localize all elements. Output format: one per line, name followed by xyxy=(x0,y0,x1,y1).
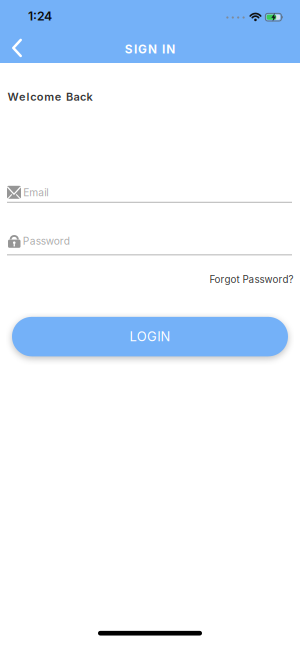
button[interactable]: Back xyxy=(0,32,32,64)
button[interactable]: Password xyxy=(0,234,300,255)
staticText: Password xyxy=(23,235,70,247)
staticText: Forgot Password? xyxy=(209,273,293,285)
button[interactable]: Email xyxy=(0,186,300,203)
staticText: 1:24 xyxy=(28,9,52,23)
button[interactable]: Forgot Password? xyxy=(209,273,293,285)
staticText: LOGIN xyxy=(129,329,171,344)
staticText: SIGN IN xyxy=(125,42,175,56)
button[interactable]: LOGIN xyxy=(12,317,288,356)
staticText: Email xyxy=(23,186,48,199)
staticText: Welcome Back xyxy=(7,90,92,103)
